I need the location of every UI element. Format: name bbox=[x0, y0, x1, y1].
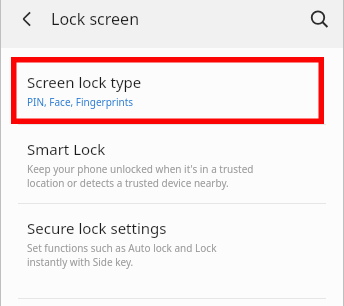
staticText: location or detects a trusted device nea… bbox=[27, 176, 229, 190]
button[interactable]: Smart Lock bbox=[0, 125, 344, 200]
button[interactable]: Back bbox=[12, 4, 42, 34]
staticText: Screen lock type bbox=[27, 72, 142, 92]
staticText: PIN, Face, Fingerprints bbox=[27, 95, 134, 109]
staticText: Set functions such as Auto lock and Lock bbox=[27, 241, 217, 255]
button[interactable]: Screen lock type bbox=[0, 60, 344, 119]
staticText: Lock screen bbox=[51, 8, 140, 30]
button[interactable]: Secure lock settings bbox=[0, 204, 344, 279]
staticText: Keep your phone unlocked when it's in a … bbox=[27, 162, 254, 176]
staticText: Smart Lock bbox=[27, 139, 106, 159]
staticText: instantly with Side key. bbox=[27, 255, 134, 269]
staticText: Secure lock settings bbox=[27, 218, 167, 238]
button[interactable]: Search bbox=[302, 2, 336, 36]
